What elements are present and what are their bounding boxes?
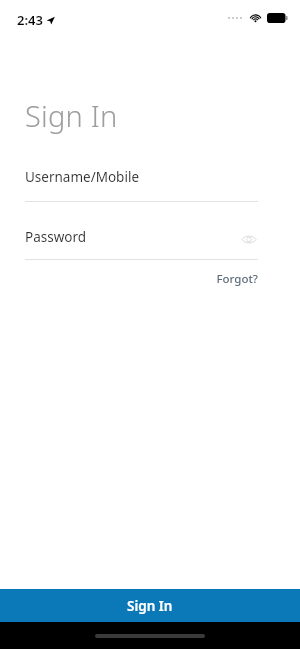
staticText: Sign In bbox=[127, 597, 173, 615]
button[interactable]: Sign In bbox=[0, 589, 300, 622]
staticText: Sign In bbox=[25, 96, 118, 135]
button[interactable]: Forgot? bbox=[210, 270, 258, 288]
staticText: Password bbox=[25, 228, 87, 246]
button[interactable]: Username/Mobile bbox=[25, 168, 258, 202]
button[interactable]: Show password bbox=[240, 230, 258, 248]
staticText: Username/Mobile bbox=[25, 168, 139, 186]
staticText: 2:43 bbox=[17, 11, 43, 29]
staticText: Forgot? bbox=[216, 271, 258, 287]
button[interactable]: Password bbox=[25, 228, 258, 260]
